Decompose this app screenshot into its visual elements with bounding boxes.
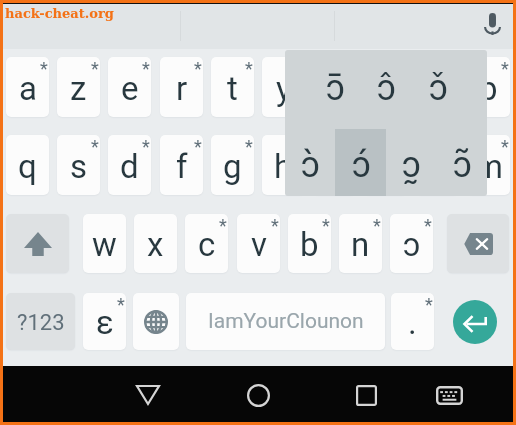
button[interactable]: Symbols xyxy=(6,293,75,350)
button[interactable]: Change language xyxy=(133,293,179,350)
button[interactable]: Home xyxy=(240,377,276,413)
button[interactable]: d xyxy=(108,135,151,195)
button[interactable]: b xyxy=(288,214,331,273)
staticText: ɛ xyxy=(96,303,114,342)
staticText: * xyxy=(91,58,99,79)
staticText: * xyxy=(194,58,202,79)
staticText: w xyxy=(92,225,117,264)
staticText: g xyxy=(223,147,242,186)
staticText: z xyxy=(70,69,87,108)
button[interactable]: c xyxy=(185,214,228,273)
staticText: y xyxy=(276,69,292,108)
button[interactable]: Switch keyboard xyxy=(431,377,467,413)
button[interactable]: Space xyxy=(186,293,385,350)
staticText: * xyxy=(373,215,381,236)
button[interactable]: a xyxy=(6,57,49,117)
button[interactable]: h xyxy=(262,135,305,195)
button[interactable]: s xyxy=(57,135,100,195)
staticText: ɔ̌ xyxy=(429,67,448,109)
button[interactable]: y xyxy=(262,57,305,117)
staticText: * xyxy=(245,58,253,79)
staticText: * xyxy=(271,215,279,236)
button[interactable]: ɔ xyxy=(390,214,433,273)
button[interactable]: j xyxy=(313,135,356,195)
button[interactable]: Voice input xyxy=(477,9,508,40)
staticText: * xyxy=(501,58,509,79)
staticText: * xyxy=(91,136,99,157)
staticText: c xyxy=(198,225,216,264)
button[interactable]: x xyxy=(134,214,177,273)
button[interactable]: w xyxy=(83,214,126,273)
button[interactable]: q xyxy=(6,135,49,195)
staticText: ɔ̃ xyxy=(453,144,472,186)
staticText: * xyxy=(194,136,202,157)
button[interactable]: ɔ̰ xyxy=(386,129,437,196)
button[interactable]: g xyxy=(211,135,254,195)
staticText: o xyxy=(428,69,447,108)
staticText: * xyxy=(322,215,330,236)
button[interactable]: ɔ̃ xyxy=(437,129,487,196)
button[interactable]: k xyxy=(364,135,407,195)
button[interactable]: n xyxy=(339,214,382,273)
button[interactable]: u xyxy=(313,57,356,117)
staticText: hack-cheat.org xyxy=(5,6,114,21)
staticText: * xyxy=(40,58,48,79)
button[interactable]: . xyxy=(391,293,434,350)
button[interactable]: v xyxy=(237,214,280,273)
staticText: t xyxy=(227,69,238,108)
staticText: ɔ̀ xyxy=(301,144,320,186)
staticText: v xyxy=(251,225,267,264)
button[interactable]: ɛ xyxy=(83,293,126,350)
staticText: ɔ xyxy=(403,225,421,264)
staticText: ɔ̄ xyxy=(326,67,345,109)
button[interactable]: ɔ̌ xyxy=(412,50,464,129)
button[interactable]: Recent apps xyxy=(348,377,384,413)
staticText: s xyxy=(70,147,88,186)
staticText: d xyxy=(120,147,139,186)
staticText: q xyxy=(18,147,37,186)
button[interactable]: ɔ̀ xyxy=(285,129,336,196)
button[interactable]: l xyxy=(416,135,459,195)
staticText: * xyxy=(245,136,253,157)
button[interactable]: Shift xyxy=(6,214,69,273)
button[interactable]: z xyxy=(57,57,100,117)
staticText: p xyxy=(479,69,498,108)
button[interactable]: r xyxy=(160,57,203,117)
staticText: j xyxy=(331,147,339,186)
button[interactable]: e xyxy=(108,57,151,117)
staticText: * xyxy=(117,294,125,315)
button[interactable]: Back xyxy=(130,377,166,413)
button[interactable]: f xyxy=(160,135,203,195)
staticText: b xyxy=(300,225,319,264)
staticText: n xyxy=(351,225,370,264)
button[interactable]: ɔ̂ xyxy=(360,50,412,129)
staticText: f xyxy=(176,147,188,186)
staticText: * xyxy=(450,136,458,157)
button[interactable]: p xyxy=(467,57,510,117)
staticText: * xyxy=(501,136,509,157)
staticText: ɔ̂ xyxy=(377,67,396,109)
button[interactable]: Backspace xyxy=(447,214,509,273)
staticText: * xyxy=(142,58,150,79)
button[interactable]: ɔ́ xyxy=(336,129,387,196)
button[interactable]: t xyxy=(211,57,254,117)
staticText: * xyxy=(425,294,433,315)
staticText: k xyxy=(377,147,394,186)
staticText: e xyxy=(121,69,139,108)
staticText: . xyxy=(408,303,417,342)
staticText: m xyxy=(474,147,503,186)
button[interactable]: i xyxy=(364,57,407,117)
button[interactable]: ɔ̄ xyxy=(309,50,361,129)
button[interactable]: Enter xyxy=(453,300,497,344)
staticText: * xyxy=(424,215,432,236)
staticText: IamYourClounon xyxy=(208,309,364,334)
button[interactable]: o xyxy=(416,57,459,117)
staticText: r xyxy=(176,69,188,108)
button[interactable]: m xyxy=(467,135,510,195)
